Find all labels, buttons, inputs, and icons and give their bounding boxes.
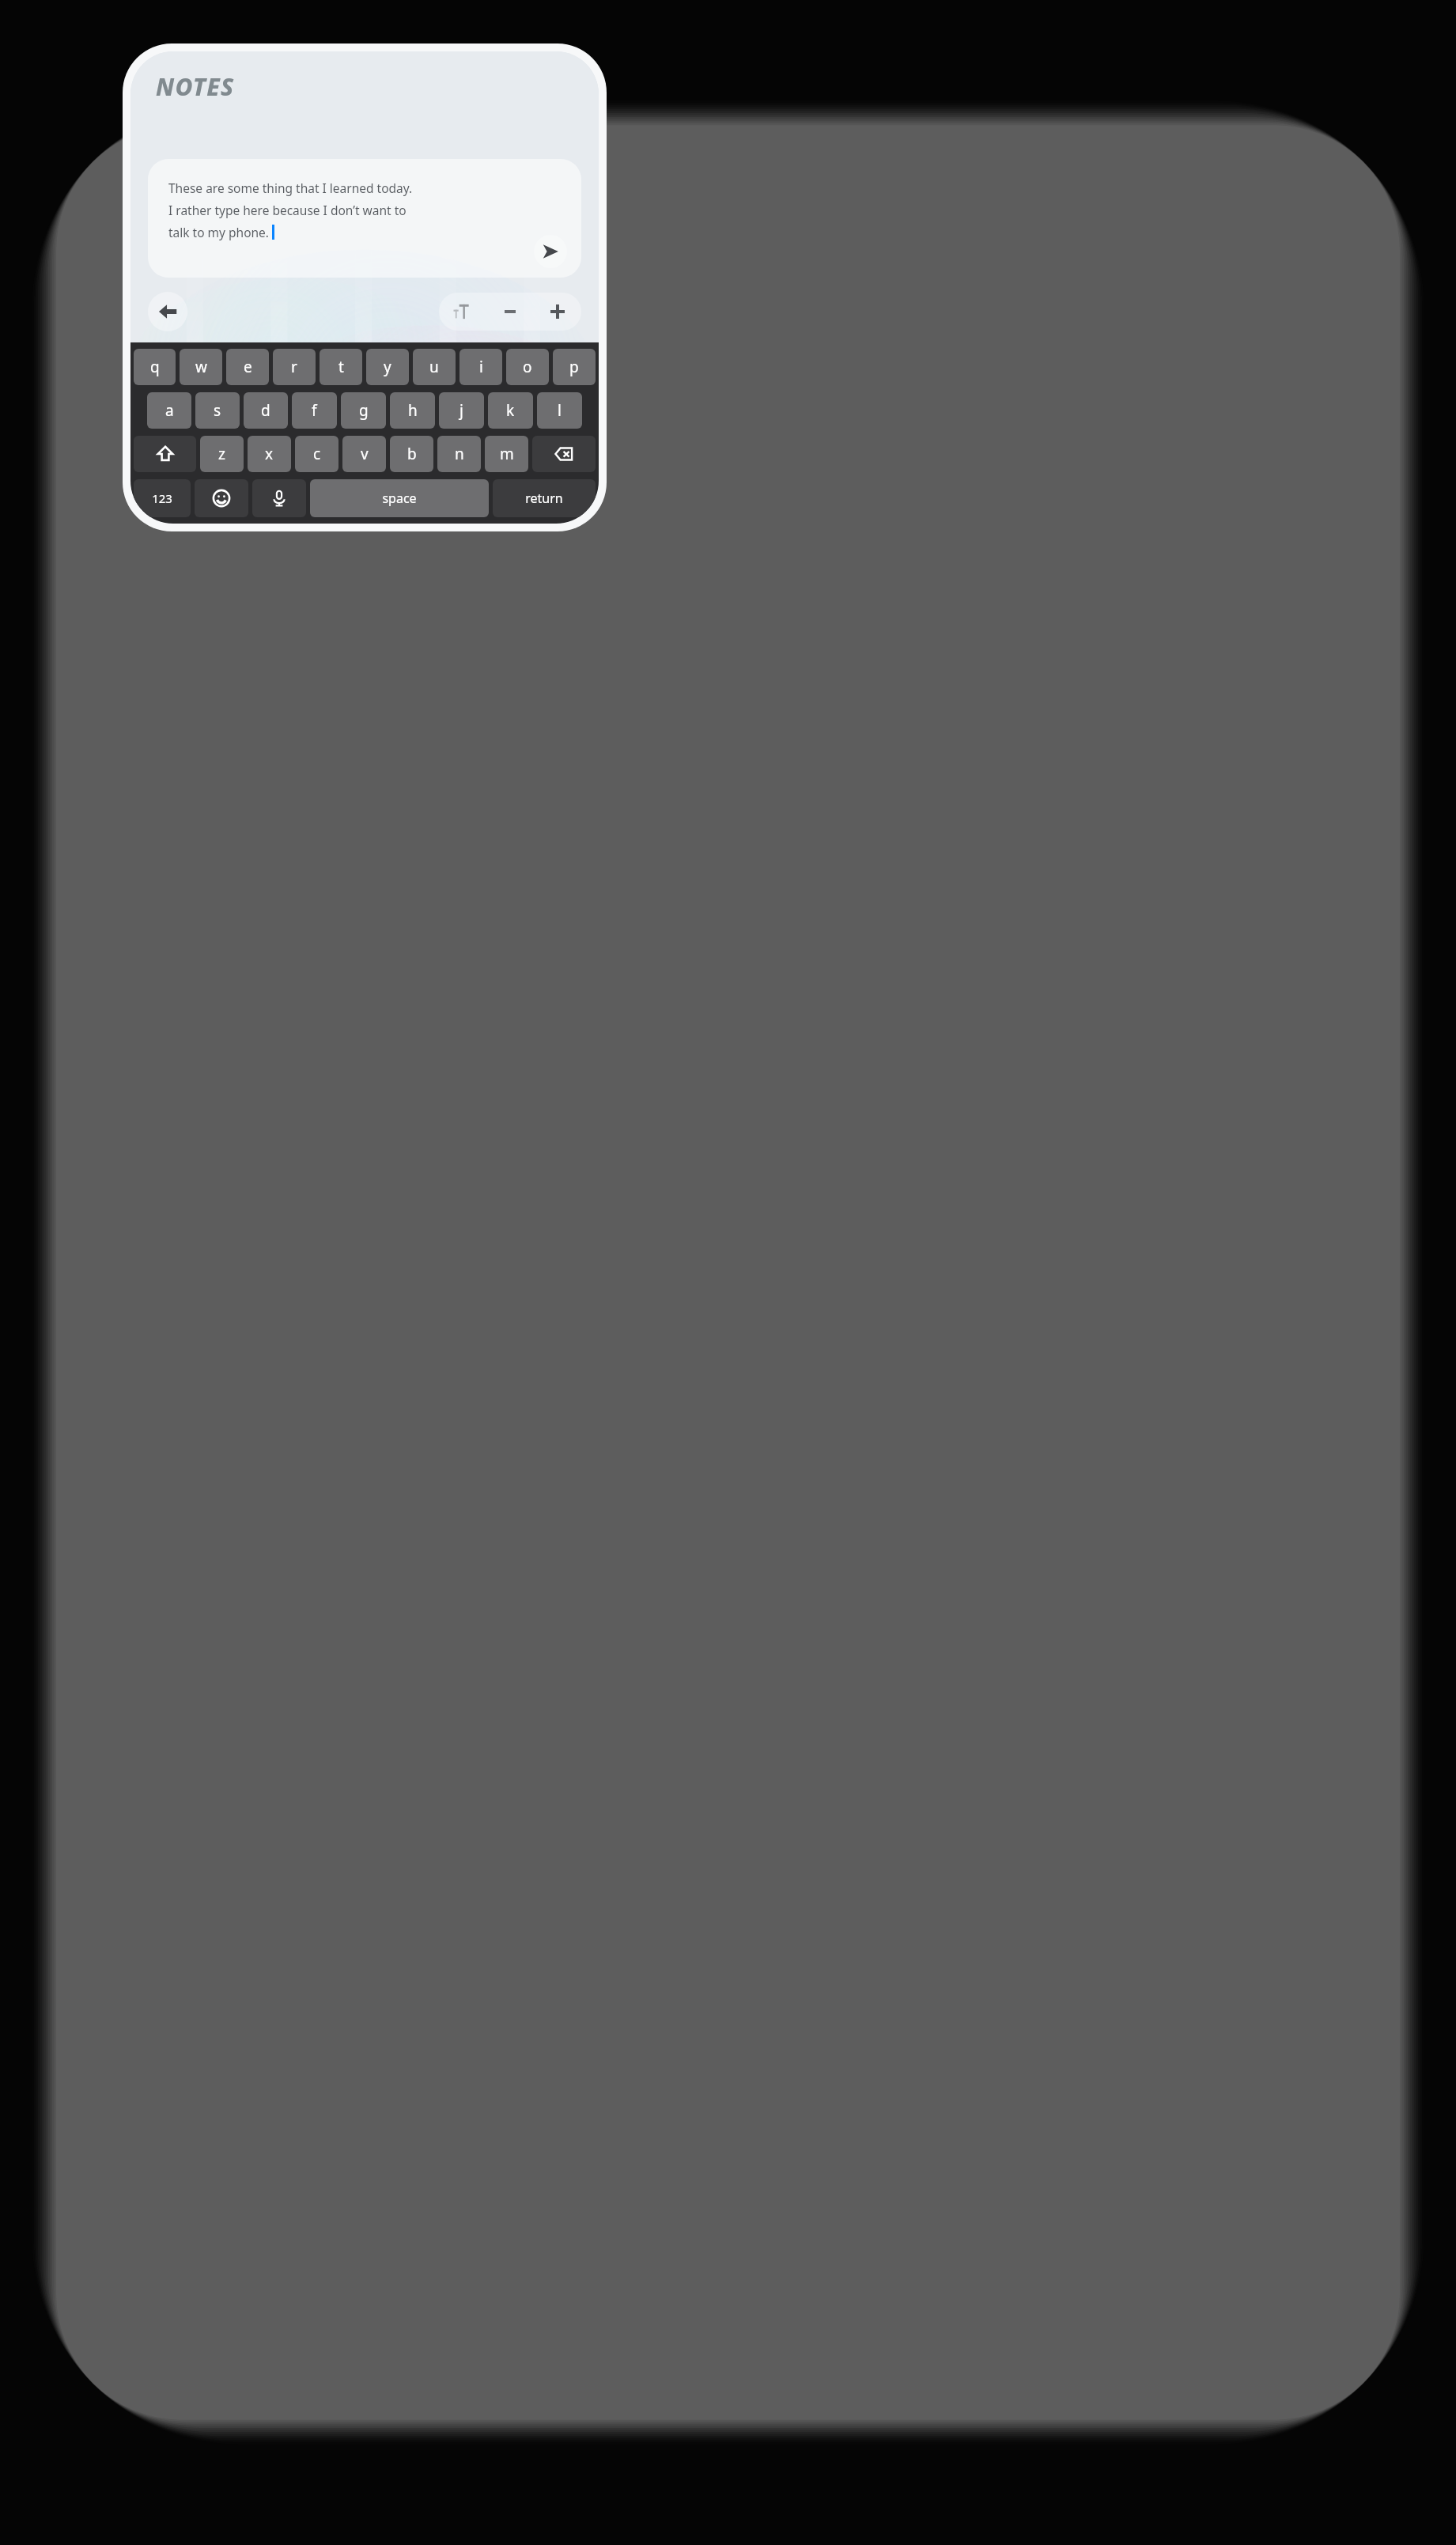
button[interactable]: s bbox=[195, 392, 240, 429]
button[interactable]: Increase text size bbox=[534, 293, 581, 331]
button[interactable]: x bbox=[248, 436, 291, 472]
button[interactable]: o bbox=[506, 349, 549, 385]
staticText: k bbox=[506, 400, 515, 421]
button[interactable]: l bbox=[537, 392, 582, 429]
staticText: h bbox=[408, 400, 418, 421]
button[interactable]: m bbox=[485, 436, 528, 472]
button[interactable]: a bbox=[147, 392, 191, 429]
button[interactable]: Shift bbox=[134, 436, 196, 472]
staticText: s bbox=[214, 400, 221, 421]
button[interactable]: d bbox=[244, 392, 288, 429]
staticText: i bbox=[479, 357, 483, 377]
button[interactable]: v bbox=[342, 436, 386, 472]
button[interactable]: z bbox=[200, 436, 244, 472]
staticText: y bbox=[384, 357, 391, 377]
staticText: a bbox=[165, 400, 174, 421]
staticText: l bbox=[558, 400, 562, 421]
button[interactable]: 123 bbox=[134, 479, 191, 517]
staticText: These are some thing that I learned toda… bbox=[168, 180, 413, 196]
staticText: x bbox=[265, 444, 274, 464]
staticText: d bbox=[261, 400, 270, 421]
button[interactable]: Send bbox=[534, 235, 567, 268]
staticText: p bbox=[569, 357, 579, 377]
button[interactable]: Decrease text size bbox=[486, 293, 534, 331]
button[interactable]: c bbox=[295, 436, 338, 472]
button[interactable]: y bbox=[366, 349, 409, 385]
staticText: 123 bbox=[152, 490, 172, 506]
staticText: m bbox=[500, 444, 514, 464]
staticText: r bbox=[291, 357, 297, 377]
button[interactable]: Backspace bbox=[532, 436, 596, 472]
staticText: e bbox=[244, 357, 252, 377]
button[interactable]: q bbox=[134, 349, 176, 385]
button[interactable]: w bbox=[180, 349, 222, 385]
staticText: q bbox=[150, 357, 160, 377]
button[interactable]: i bbox=[459, 349, 502, 385]
staticText: u bbox=[429, 357, 439, 377]
staticText: b bbox=[407, 444, 417, 464]
button[interactable]: Text size bbox=[439, 293, 486, 331]
button[interactable]: r bbox=[273, 349, 316, 385]
staticText: v bbox=[361, 444, 369, 464]
button[interactable]: Back bbox=[148, 292, 187, 331]
staticText: o bbox=[523, 357, 532, 377]
button[interactable]: u bbox=[413, 349, 456, 385]
staticText: NOTES bbox=[156, 70, 235, 103]
button[interactable]: h bbox=[390, 392, 435, 429]
button[interactable]: space bbox=[310, 479, 489, 517]
button[interactable]: NOTES bbox=[156, 70, 235, 103]
staticText: n bbox=[455, 444, 464, 464]
staticText: c bbox=[313, 444, 321, 464]
staticText: t bbox=[338, 357, 344, 377]
button[interactable]: f bbox=[292, 392, 337, 429]
button[interactable]: j bbox=[439, 392, 484, 429]
button[interactable]: p bbox=[553, 349, 596, 385]
staticText: j bbox=[459, 400, 463, 421]
staticText: talk to my phone. bbox=[168, 224, 269, 240]
button[interactable]: Emoji bbox=[195, 479, 248, 517]
button[interactable]: e bbox=[226, 349, 269, 385]
staticText: space bbox=[382, 490, 417, 507]
button[interactable]: n bbox=[437, 436, 481, 472]
button[interactable]: Voice input bbox=[252, 479, 306, 517]
staticText: g bbox=[359, 400, 369, 421]
staticText: z bbox=[218, 444, 225, 464]
button[interactable]: These are some thing that I learned toda… bbox=[148, 159, 581, 278]
staticText: w bbox=[195, 357, 207, 377]
button[interactable]: b bbox=[390, 436, 433, 472]
staticText: f bbox=[312, 400, 317, 421]
button[interactable]: k bbox=[488, 392, 533, 429]
button[interactable]: return bbox=[493, 479, 596, 517]
staticText: return bbox=[525, 490, 563, 507]
button[interactable]: t bbox=[320, 349, 362, 385]
staticText: I rather type here because I don’t want … bbox=[168, 202, 407, 218]
button[interactable]: g bbox=[341, 392, 386, 429]
